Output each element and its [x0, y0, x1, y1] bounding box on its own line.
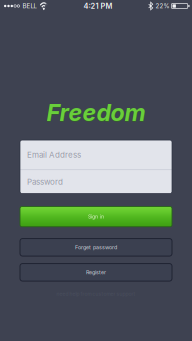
- staticText: Register: [86, 269, 106, 276]
- staticText: 22%: [155, 2, 169, 10]
- staticText: Freedom: [46, 98, 145, 127]
- staticText: Freedom: [47, 99, 146, 127]
- staticText: Forget password: [75, 244, 117, 251]
- button[interactable]: Email Address: [20, 140, 172, 169]
- staticText: Password: [27, 177, 63, 187]
- staticText: BELL: [23, 2, 37, 10]
- staticText: 4:21 PM: [83, 1, 112, 10]
- staticText: Sign in: [88, 213, 104, 220]
- staticText: Email Address: [27, 150, 81, 160]
- button[interactable]: Register: [20, 264, 172, 281]
- button[interactable]: Sign in: [20, 207, 172, 227]
- button[interactable]: Forget password: [20, 239, 172, 256]
- button[interactable]: Password: [20, 170, 172, 194]
